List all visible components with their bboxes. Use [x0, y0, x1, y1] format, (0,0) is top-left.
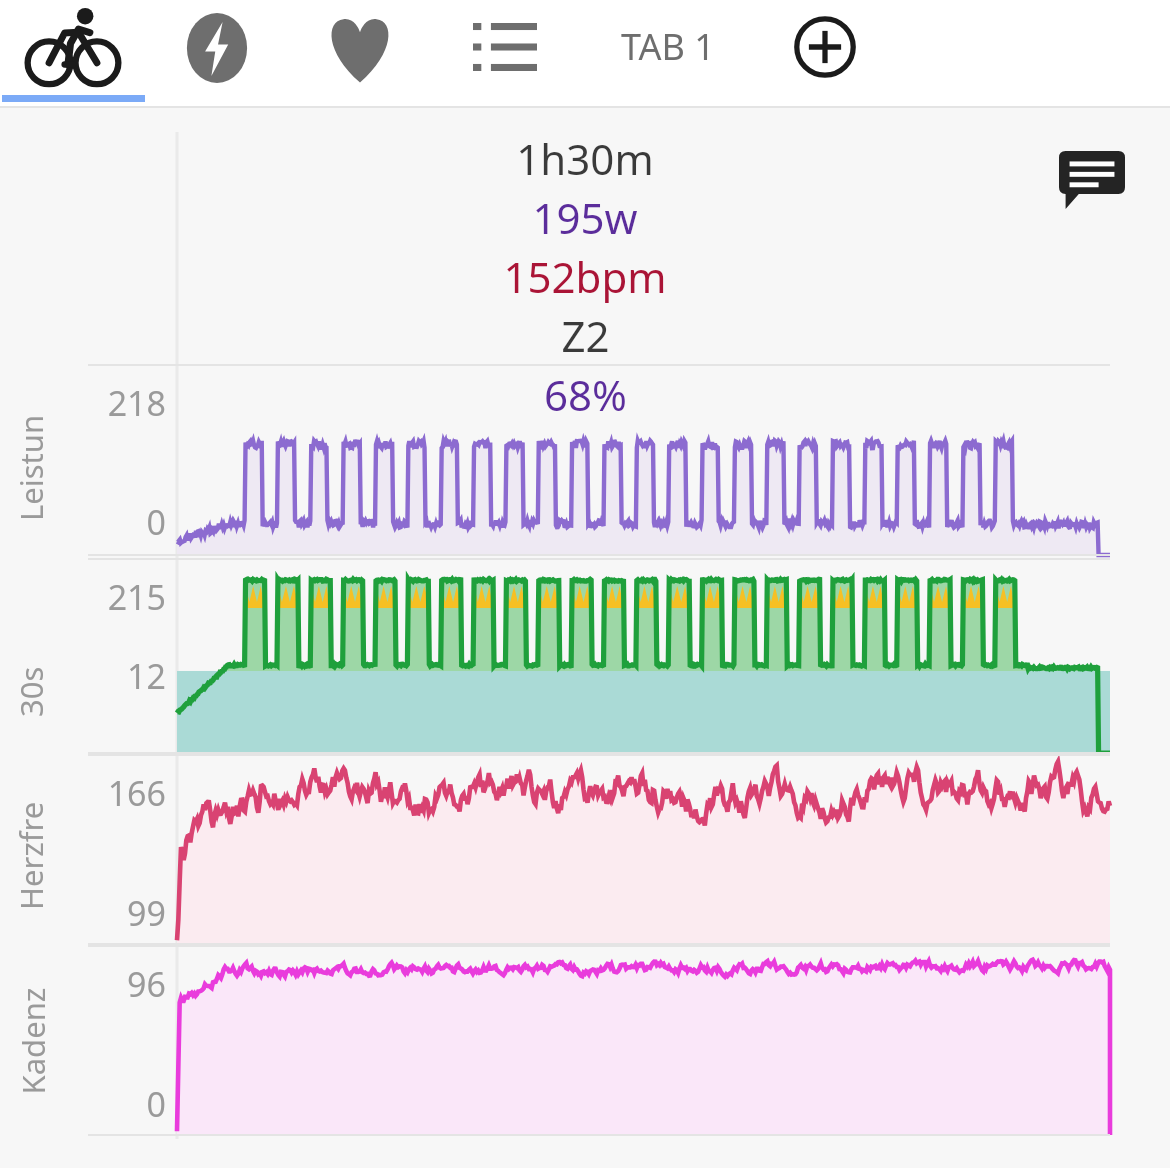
staticText: Z2 [561, 307, 610, 364]
staticText: 215 [88, 574, 166, 620]
staticText: 96 [88, 961, 166, 1007]
button[interactable]: Heart rate [288, 0, 432, 100]
button[interactable]: Cycling [0, 0, 146, 100]
button[interactable]: Comments [1042, 138, 1142, 222]
button[interactable]: Add tab [762, 0, 888, 100]
staticText: 68% [544, 366, 627, 423]
staticText: 0 [88, 1081, 166, 1127]
staticText: 218 [88, 380, 166, 426]
staticText: 30s Leistung [10, 597, 54, 717]
button[interactable]: TAB 1 [578, 0, 758, 100]
staticText: Herzfrequenz [10, 790, 54, 910]
staticText: 99 [88, 890, 166, 936]
staticText: 12 [88, 653, 166, 699]
staticText: 152bpm [503, 248, 667, 305]
staticText: Leistung [10, 401, 54, 521]
button[interactable]: Power [146, 0, 288, 100]
button[interactable]: List [432, 0, 578, 100]
staticText: 195w [532, 189, 638, 246]
staticText: 166 [88, 770, 166, 816]
staticText: 0 [88, 499, 166, 545]
staticText: TAB 1 [621, 22, 715, 71]
staticText: Kadenz [11, 987, 53, 1094]
staticText: 1h30m [516, 130, 654, 187]
